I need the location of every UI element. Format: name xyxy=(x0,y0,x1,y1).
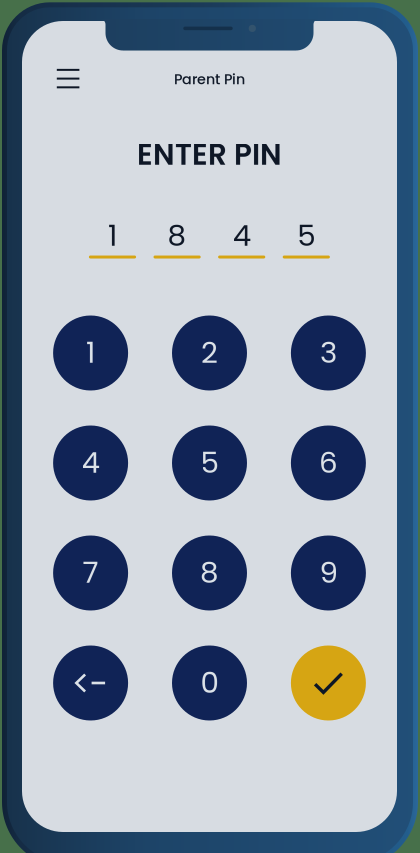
button[interactable]: 4 xyxy=(53,425,128,500)
button[interactable]: 7 xyxy=(53,535,128,610)
staticText: 1 xyxy=(108,215,117,256)
staticText: 7 xyxy=(83,552,99,593)
staticText: 2 xyxy=(201,332,218,373)
button[interactable]: Delete xyxy=(53,645,128,720)
button[interactable]: Confirm xyxy=(291,645,366,720)
staticText: Parent Pin xyxy=(174,69,245,89)
staticText: 4 xyxy=(233,215,251,256)
button[interactable]: 6 xyxy=(291,425,366,500)
staticText: 9 xyxy=(319,552,337,593)
staticText: 8 xyxy=(168,215,187,256)
button[interactable]: 3 xyxy=(291,315,366,390)
staticText: 0 xyxy=(200,662,218,703)
staticText: 5 xyxy=(297,215,315,256)
staticText: 1 xyxy=(86,332,95,373)
staticText: 3 xyxy=(320,332,337,373)
staticText: 8 xyxy=(200,552,219,593)
button[interactable]: 5 xyxy=(172,425,247,500)
staticText: 4 xyxy=(82,442,100,483)
staticText: ENTER PIN xyxy=(137,134,282,175)
button[interactable]: 2 xyxy=(172,315,247,390)
staticText: 5 xyxy=(200,442,218,483)
button[interactable]: Menu xyxy=(46,57,90,101)
button[interactable]: 1 xyxy=(53,315,128,390)
staticText: 6 xyxy=(319,442,338,483)
button[interactable]: 0 xyxy=(172,645,247,720)
button[interactable]: 8 xyxy=(172,535,247,610)
button[interactable]: 9 xyxy=(291,535,366,610)
